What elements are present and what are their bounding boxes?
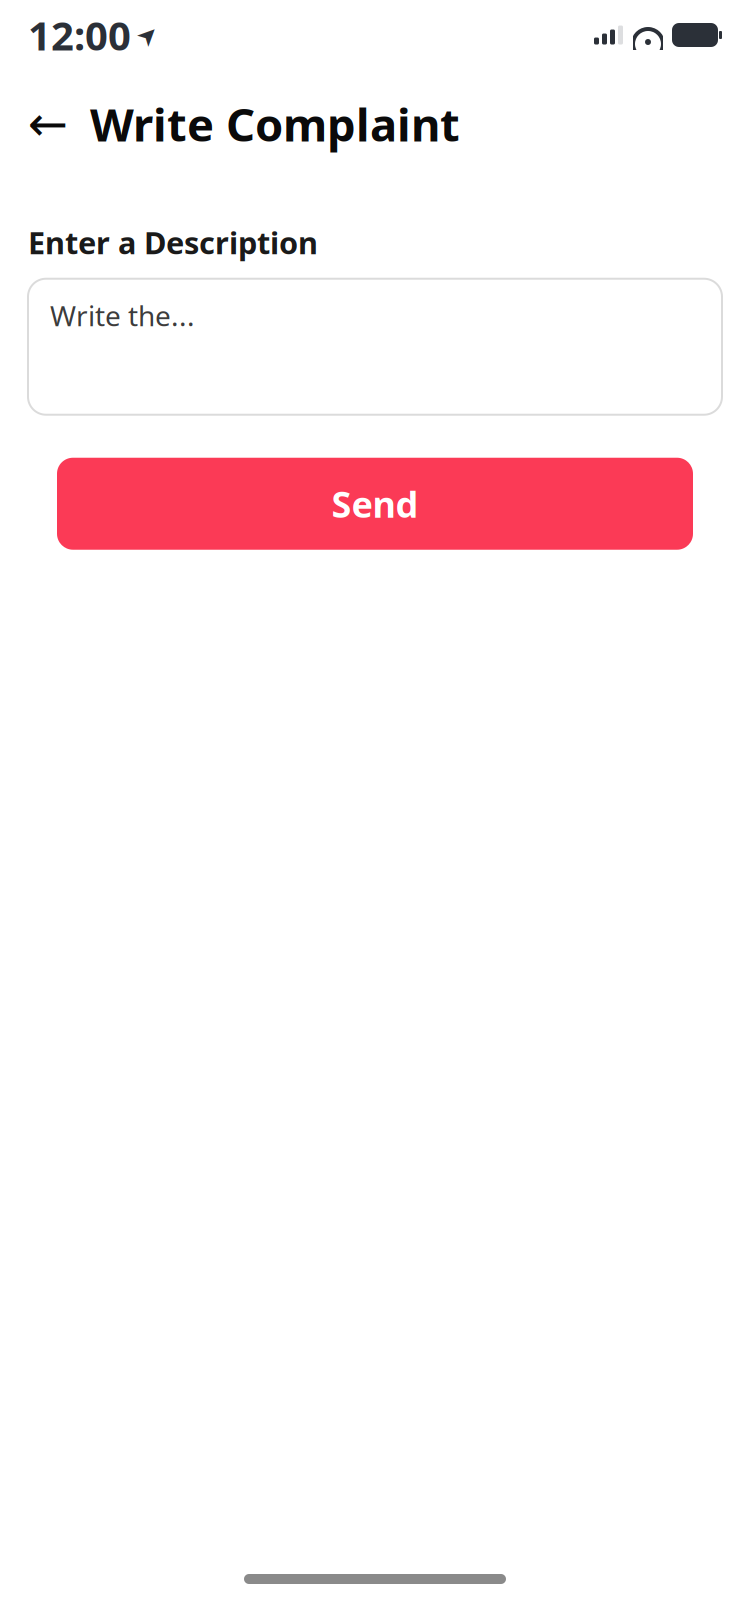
staticText: 12:00	[28, 8, 131, 61]
staticText: ➤	[137, 21, 158, 49]
button[interactable]: Back	[26, 102, 70, 146]
staticText: Write the...	[50, 297, 195, 334]
staticText: Write Complaint	[90, 94, 460, 154]
staticText: Enter a Description	[28, 222, 318, 263]
staticText: ←	[28, 97, 68, 151]
button[interactable]: Send	[57, 458, 693, 550]
staticText: Send	[331, 480, 418, 528]
